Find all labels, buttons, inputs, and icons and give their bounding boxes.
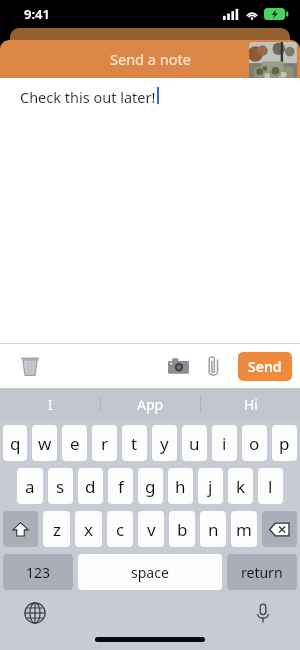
button[interactable]: Attach file: [198, 350, 230, 382]
staticText: z: [53, 518, 61, 541]
staticText: e: [70, 432, 80, 455]
button[interactable]: return: [227, 554, 297, 590]
button[interactable]: u: [182, 425, 207, 461]
button[interactable]: y: [152, 425, 177, 461]
staticText: Hi: [244, 395, 258, 414]
button[interactable]: e: [62, 425, 87, 461]
button[interactable]: n: [200, 511, 226, 547]
button[interactable]: 123: [3, 554, 73, 590]
button[interactable]: Camera: [162, 350, 194, 382]
staticText: t: [131, 432, 138, 455]
button[interactable]: j: [198, 468, 223, 504]
staticText: return: [241, 563, 283, 582]
button[interactable]: Delete: [14, 350, 46, 382]
staticText: space: [131, 563, 169, 582]
staticText: s: [56, 475, 65, 498]
button[interactable]: t: [122, 425, 147, 461]
button[interactable]: g: [138, 468, 163, 504]
button[interactable]: a: [17, 468, 43, 504]
button[interactable]: x: [75, 511, 102, 547]
button[interactable]: k: [228, 468, 253, 504]
button[interactable]: d: [78, 468, 103, 504]
staticText: m: [236, 518, 252, 541]
button[interactable]: Send: [238, 352, 292, 381]
staticText: f: [118, 475, 124, 498]
staticText: g: [145, 475, 156, 498]
staticText: d: [85, 475, 96, 498]
button[interactable]: z: [43, 511, 70, 547]
button[interactable]: r: [92, 425, 117, 461]
button[interactable]: Shift: [3, 511, 38, 547]
button[interactable]: I: [0, 388, 100, 420]
staticText: v: [147, 518, 156, 541]
staticText: 123: [26, 563, 51, 582]
staticText: a: [25, 475, 35, 498]
staticText: Check this out later!: [20, 87, 156, 107]
button[interactable]: p: [272, 425, 297, 461]
staticText: y: [160, 432, 169, 455]
button[interactable]: Dictate: [250, 600, 276, 626]
button[interactable]: c: [107, 511, 133, 547]
staticText: u: [189, 432, 200, 455]
button[interactable]: App: [101, 388, 200, 420]
staticText: b: [177, 518, 188, 541]
staticText: p: [279, 432, 290, 455]
staticText: i: [222, 432, 227, 455]
staticText: r: [101, 432, 109, 455]
button[interactable]: w: [32, 425, 57, 461]
button[interactable]: space: [78, 554, 222, 590]
staticText: o: [249, 432, 260, 455]
button[interactable]: s: [48, 468, 73, 504]
staticText: w: [38, 432, 52, 455]
staticText: q: [10, 432, 21, 455]
staticText: h: [175, 475, 186, 498]
button[interactable]: h: [168, 468, 193, 504]
staticText: x: [84, 518, 93, 541]
button[interactable]: b: [169, 511, 195, 547]
button[interactable]: o: [242, 425, 267, 461]
button[interactable]: i: [212, 425, 237, 461]
staticText: n: [208, 518, 219, 541]
staticText: j: [208, 475, 213, 498]
button[interactable]: q: [3, 425, 27, 461]
button[interactable]: Switch keyboard: [22, 600, 48, 626]
staticText: I: [48, 395, 53, 414]
button[interactable]: v: [138, 511, 164, 547]
staticText: Send a note: [110, 49, 191, 69]
button[interactable]: Backspace: [262, 511, 297, 547]
staticText: l: [268, 475, 273, 498]
staticText: App: [137, 395, 164, 414]
button[interactable]: m: [231, 511, 257, 547]
button[interactable]: f: [108, 468, 133, 504]
staticText: Send: [248, 357, 282, 376]
staticText: k: [236, 475, 246, 498]
button[interactable]: l: [258, 468, 283, 504]
staticText: c: [116, 518, 125, 541]
staticText: 9:41: [24, 5, 50, 23]
button[interactable]: Send a note: [0, 40, 300, 78]
button[interactable]: Hi: [201, 388, 300, 420]
button[interactable]: Attached photo: [249, 42, 297, 90]
